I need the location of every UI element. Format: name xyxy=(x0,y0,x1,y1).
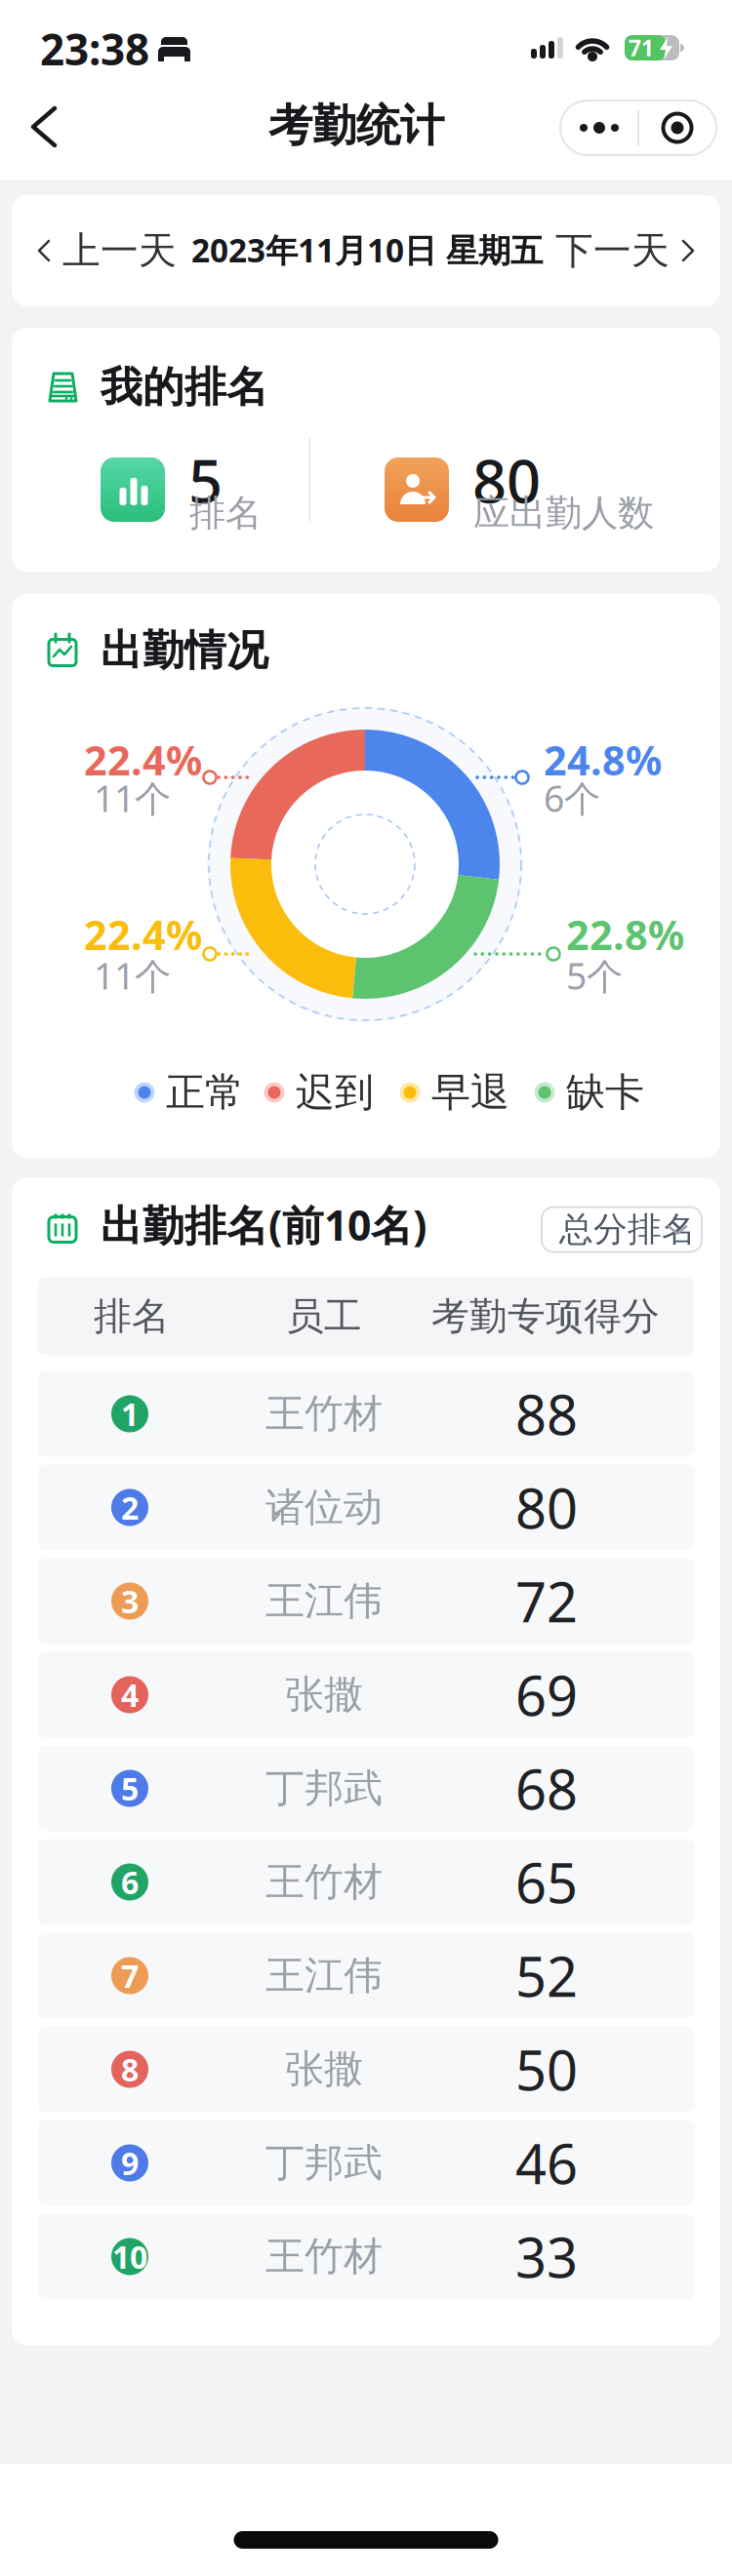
staticText: 8 xyxy=(121,2049,139,2090)
button[interactable]: Back xyxy=(21,103,68,150)
button[interactable]: Close xyxy=(638,100,716,155)
staticText: 王江伟 xyxy=(265,1577,383,1625)
staticText: 应出勤人数 xyxy=(473,491,654,535)
staticText: 丁邦武 xyxy=(265,2139,383,2187)
staticText: 丁邦武 xyxy=(265,1764,383,1812)
staticText: 2 xyxy=(121,1487,139,1528)
staticText: 9 xyxy=(121,2142,139,2184)
staticText: 71 xyxy=(629,33,654,62)
staticText: 张撒 xyxy=(285,1671,363,1719)
staticText: 排名 xyxy=(189,491,262,535)
staticText: 我的排名 xyxy=(101,362,268,413)
button[interactable]: 下一天 xyxy=(550,212,697,290)
staticText: 下一天 xyxy=(555,228,670,274)
staticText: 王竹材 xyxy=(265,1390,383,1438)
staticText: 72 xyxy=(515,1565,578,1637)
staticText: 5 xyxy=(188,440,223,520)
staticText: 王竹材 xyxy=(265,2233,383,2280)
staticText: 王竹材 xyxy=(265,1858,383,1906)
staticText: 80 xyxy=(515,1471,578,1544)
staticText: 王江伟 xyxy=(265,1952,383,2000)
staticText: 考勤专项得分 xyxy=(431,1293,660,1340)
staticText: 69 xyxy=(515,1658,578,1731)
staticText: 23:38 xyxy=(40,20,149,77)
staticText: 出勤情况 xyxy=(101,625,268,676)
button[interactable]: More xyxy=(560,100,638,155)
staticText: 6 xyxy=(121,1861,139,1903)
staticText: 上一天 xyxy=(62,228,177,274)
staticText: 缺卡 xyxy=(566,1068,644,1116)
staticText: 出勤排名(前10名) xyxy=(101,1197,427,1252)
staticText: 46 xyxy=(515,2127,578,2199)
staticText: 88 xyxy=(515,1378,578,1450)
staticText: 50 xyxy=(515,2033,578,2106)
staticText: 10 xyxy=(112,2236,147,2277)
staticText: 68 xyxy=(515,1752,578,1825)
staticText: 80 xyxy=(472,440,541,520)
staticText: 2023年11月10日 星期五 xyxy=(191,228,543,271)
staticText: 22.4% xyxy=(84,908,202,961)
button[interactable]: 总分排名 xyxy=(542,1207,702,1252)
staticText: 1 xyxy=(121,1393,139,1435)
staticText: 诸位动 xyxy=(265,1483,383,1531)
staticText: 正常 xyxy=(166,1068,244,1116)
staticText: 33 xyxy=(515,2220,578,2293)
staticText: 张撒 xyxy=(285,2045,363,2093)
staticText: 22.4% xyxy=(84,733,202,787)
staticText: 6个 xyxy=(544,774,600,822)
staticText: 早退 xyxy=(431,1068,509,1116)
staticText: 4 xyxy=(121,1674,139,1716)
staticText: 11个 xyxy=(94,951,171,1000)
staticText: 考勤统计 xyxy=(268,99,444,153)
staticText: 7 xyxy=(121,1955,139,1996)
staticText: 3 xyxy=(121,1580,139,1622)
staticText: 11个 xyxy=(94,774,171,822)
staticText: 5个 xyxy=(566,951,623,1000)
staticText: 22.8% xyxy=(566,908,684,961)
staticText: 24.8% xyxy=(544,733,662,787)
staticText: 65 xyxy=(515,1846,578,1918)
staticText: 排名 xyxy=(94,1293,170,1340)
staticText: 总分排名 xyxy=(559,1209,696,1250)
staticText: 52 xyxy=(515,1939,578,2012)
staticText: 5 xyxy=(121,1768,139,1809)
button[interactable]: 上一天 xyxy=(35,212,182,290)
staticText: 迟到 xyxy=(296,1068,374,1116)
staticText: 员工 xyxy=(286,1293,362,1340)
